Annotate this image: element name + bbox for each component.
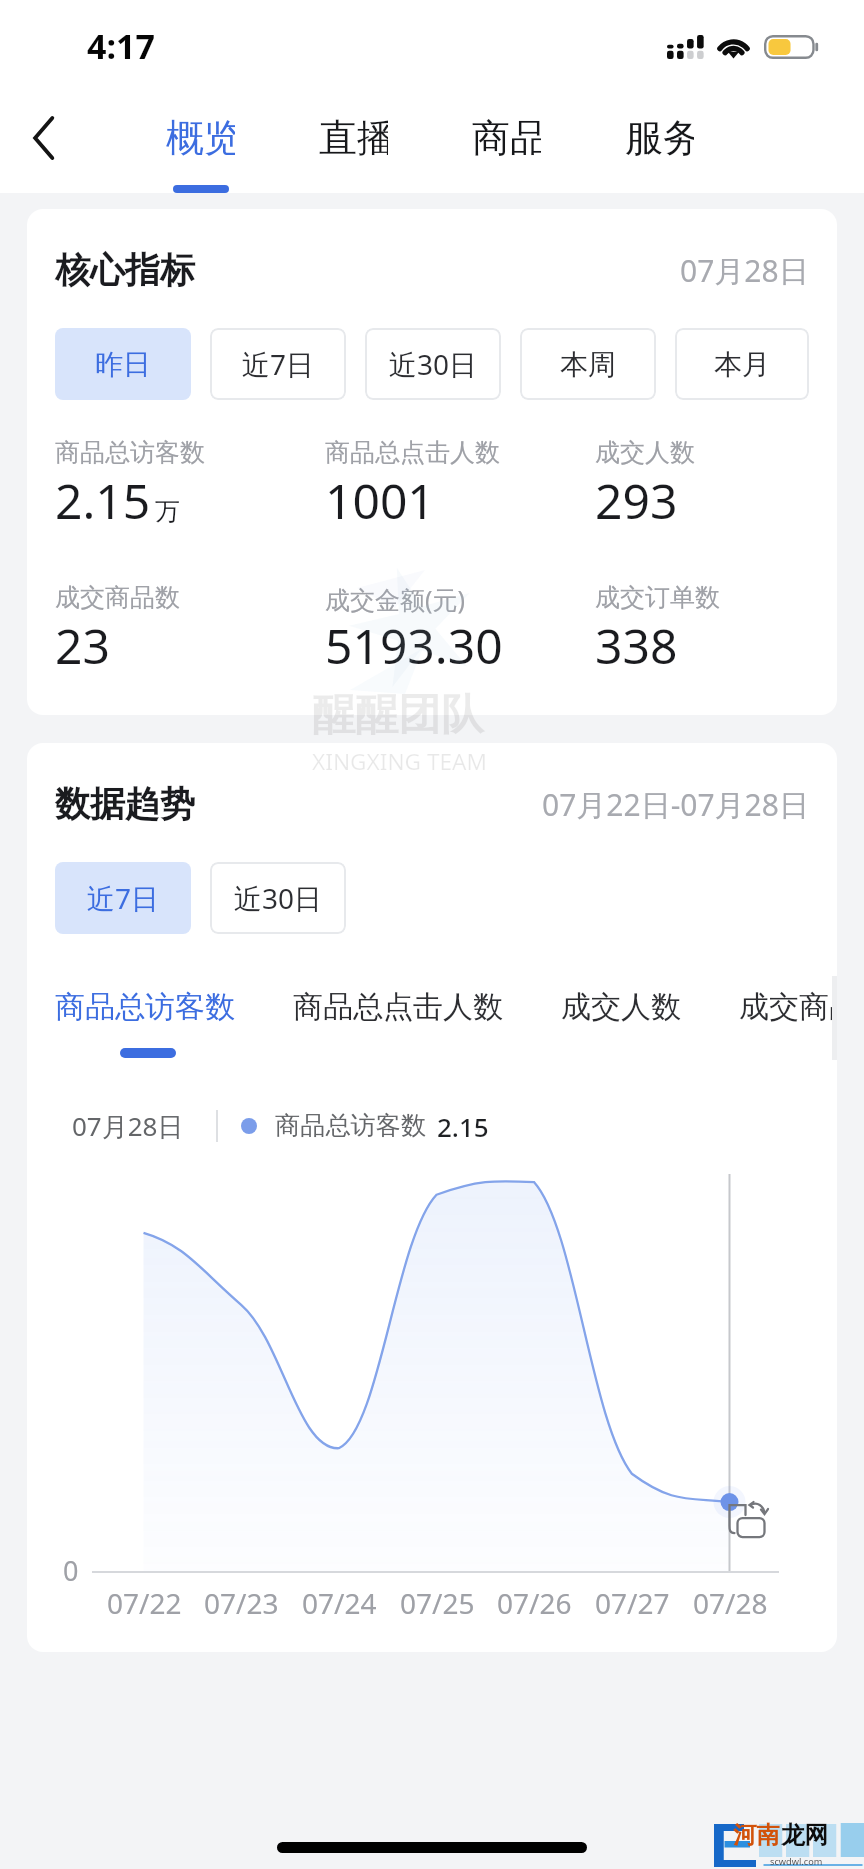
staticText: 成交商品数 xyxy=(55,582,180,613)
staticText: 直播 xyxy=(319,114,388,162)
button[interactable]: 成交商品数 xyxy=(739,988,837,1058)
staticText: 07/24 xyxy=(302,1584,377,1622)
staticText: 07月28日 xyxy=(680,250,809,291)
staticText: 07/22 xyxy=(107,1584,182,1622)
button[interactable]: 近30日 xyxy=(365,328,501,400)
staticText: 成交订单数 xyxy=(595,582,720,613)
button[interactable]: 服务 xyxy=(625,90,694,193)
staticText: 服务 xyxy=(625,114,694,162)
button[interactable]: 近7日 xyxy=(55,862,191,934)
staticText: 07月28日 xyxy=(72,1108,184,1144)
staticText: 23 xyxy=(55,613,110,678)
staticText: 近30日 xyxy=(389,345,478,383)
staticText: 338 xyxy=(595,613,678,678)
button[interactable]: 近30日 xyxy=(210,862,346,934)
staticText: 河南 xyxy=(733,1820,781,1850)
button[interactable]: 直播 xyxy=(319,90,388,193)
button[interactable]: 商品总访客数 xyxy=(55,988,235,1058)
staticText: 07/25 xyxy=(400,1584,475,1622)
staticText: 近30日 xyxy=(234,879,323,917)
staticText: 293 xyxy=(595,468,678,533)
button[interactable]: 近7日 xyxy=(210,328,346,400)
button[interactable]: 昨日 xyxy=(55,328,191,400)
staticText: 成交人数 xyxy=(595,437,695,468)
staticText: 成交金额(元) xyxy=(325,582,466,616)
staticText: 07/26 xyxy=(497,1584,572,1622)
staticText: scwdwl.com xyxy=(770,1855,823,1868)
staticText: 商品总访客数 xyxy=(275,1110,427,1142)
button[interactable]: 本周 xyxy=(520,328,656,400)
staticText: 数据趋势 xyxy=(55,782,195,826)
staticText: 昨日 xyxy=(95,347,151,382)
staticText: 1001 xyxy=(325,468,435,533)
staticText: 商品总点击人数 xyxy=(325,437,500,468)
staticText: XINGXING TEAM xyxy=(312,746,487,777)
button[interactable]: Back xyxy=(7,102,79,174)
staticText: 本月 xyxy=(714,347,770,382)
button[interactable]: 本月 xyxy=(675,328,809,400)
staticText: 本周 xyxy=(560,347,616,382)
staticText: 2.15 xyxy=(55,468,151,533)
staticText: 2.15 xyxy=(437,1109,489,1144)
staticText: 近7日 xyxy=(242,345,315,383)
staticText: 概览 xyxy=(166,114,235,162)
staticText: 5193.30 xyxy=(325,613,503,678)
staticText: 成交人数 xyxy=(561,988,681,1026)
staticText: 万 xyxy=(155,496,180,527)
staticText: 醒醒团队 xyxy=(312,688,484,742)
staticText: 成交商品数 xyxy=(739,988,837,1026)
staticText: 0 xyxy=(63,1552,79,1589)
staticText: 龙网 xyxy=(781,1820,829,1850)
staticText: 07/27 xyxy=(595,1584,670,1622)
staticText: 商品总访客数 xyxy=(55,437,205,468)
staticText: 商品 xyxy=(472,114,541,162)
staticText: 商品总点击人数 xyxy=(293,988,503,1026)
button[interactable]: 成交人数 xyxy=(561,988,681,1058)
staticText: 商品总访客数 xyxy=(55,988,235,1026)
staticText: 07/28 xyxy=(693,1584,768,1622)
staticText: 近7日 xyxy=(87,879,160,917)
staticText: 07/23 xyxy=(204,1584,279,1622)
staticText: 核心指标 xyxy=(55,248,195,292)
staticText: 07月22日-07月28日 xyxy=(542,784,809,825)
button[interactable]: 商品总点击人数 xyxy=(293,988,503,1058)
button[interactable]: 商品 xyxy=(472,90,541,193)
button[interactable]: 概览 xyxy=(166,90,235,193)
staticText: 4:17 xyxy=(87,23,155,69)
